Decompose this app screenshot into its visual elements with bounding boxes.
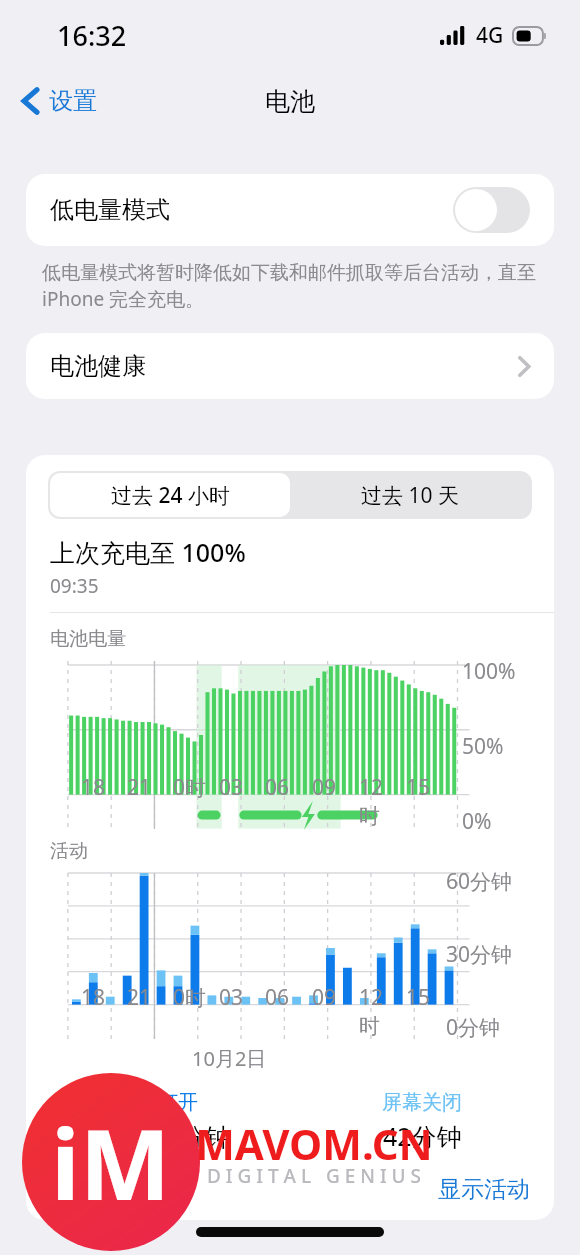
- staticText: 06: [265, 983, 290, 1012]
- staticText: 10月2日: [192, 1045, 267, 1072]
- staticText: 5小时21分钟: [87, 1119, 230, 1153]
- staticText: 21: [127, 983, 152, 1012]
- staticText: 屏幕打开: [118, 1090, 198, 1115]
- staticText: 低电量模式: [50, 195, 170, 225]
- staticText: D I G I T A L G E N I U S: [24, 1163, 580, 1189]
- staticText: 0时: [173, 983, 207, 1012]
- staticText: 设置: [49, 86, 97, 116]
- staticText: 21: [127, 773, 152, 802]
- staticText: 活动: [50, 839, 88, 863]
- staticText: 显示活动: [438, 1175, 530, 1204]
- button[interactable]: 低电量模式: [26, 174, 554, 246]
- staticText: 低电量模式将暂时降低如下载和邮件抓取等后台活动，直至 iPhone 完全充电。: [42, 259, 538, 312]
- staticText: 4G: [476, 21, 504, 50]
- staticText: 12时: [359, 773, 401, 829]
- staticText: 03: [219, 773, 244, 802]
- staticText: 18: [81, 983, 106, 1012]
- button[interactable]: 电池健康: [26, 333, 554, 399]
- staticText: 60分钟: [446, 867, 513, 896]
- staticText: 09: [312, 983, 337, 1012]
- staticText: 15: [406, 773, 431, 802]
- staticText: 30分钟: [446, 940, 513, 969]
- staticText: 上次充电至 100%: [50, 535, 246, 569]
- button[interactable]: 过去 24 小时: [50, 473, 290, 517]
- staticText: 电池电量: [50, 627, 126, 651]
- staticText: 09: [312, 773, 337, 802]
- staticText: 15: [406, 983, 431, 1012]
- button[interactable]: 设置: [14, 80, 105, 122]
- staticText: 42分钟: [383, 1119, 462, 1153]
- staticText: 电池用量: [50, 1175, 142, 1204]
- staticText: 100%: [462, 657, 516, 686]
- button[interactable]: 过去 10 天: [290, 473, 530, 517]
- staticText: 0%: [462, 807, 492, 829]
- staticText: 12时: [359, 983, 401, 1039]
- staticText: MAVOM.CN: [24, 1115, 580, 1172]
- staticText: 过去 24 小时: [111, 481, 230, 510]
- staticText: 电池健康: [50, 351, 146, 381]
- staticText: 0时: [173, 773, 207, 802]
- staticText: 16:32: [57, 17, 127, 54]
- staticText: 09:35: [50, 573, 99, 599]
- staticText: 03: [219, 983, 244, 1012]
- staticText: 电池: [265, 86, 315, 117]
- button[interactable]: 显示活动: [438, 1175, 530, 1204]
- staticText: 0分钟: [446, 1013, 501, 1039]
- staticText: iM: [51, 1097, 171, 1228]
- button[interactable]: 低电量模式开关: [453, 187, 530, 233]
- staticText: 18: [81, 773, 106, 802]
- staticText: 屏幕关闭: [382, 1090, 462, 1115]
- staticText: 06: [265, 773, 290, 802]
- staticText: 过去 10 天: [361, 481, 459, 510]
- staticText: 50%: [462, 732, 504, 761]
